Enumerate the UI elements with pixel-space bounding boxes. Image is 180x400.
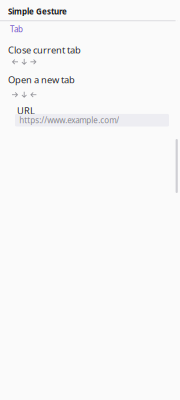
staticText: https://www.example.com/: [19, 115, 119, 125]
button[interactable]: Tab: [0, 21, 23, 35]
staticText: URL: [17, 104, 35, 117]
staticText: Open a new tab: [8, 73, 75, 86]
staticText: Close current tab: [8, 44, 81, 56]
staticText: Tab: [10, 24, 23, 34]
staticText: Simple Gesture: [8, 6, 67, 17]
